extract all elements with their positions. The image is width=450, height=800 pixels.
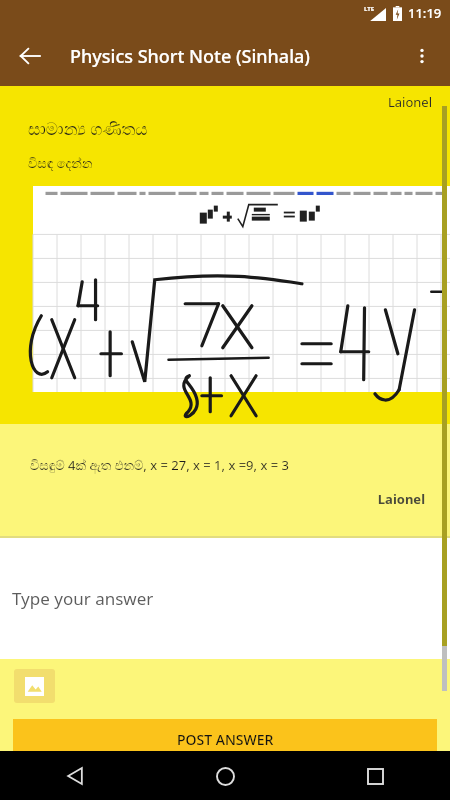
button[interactable]: More options [398, 32, 446, 80]
staticText: විසඳ දෙන්න [28, 154, 93, 172]
staticText: Type your answer [12, 587, 154, 610]
staticText: 11:19 [408, 4, 442, 22]
button[interactable]: Back [51, 752, 99, 800]
staticText: Laionel [0, 93, 432, 111]
staticText: විසඳුම් 4ක් ඇත එනම්, x = 27, x = 1, x =9… [30, 456, 289, 474]
button[interactable]: Type your answer [0, 538, 450, 659]
staticText: LTE [364, 5, 375, 13]
button[interactable]: Question image [33, 186, 450, 392]
staticText: POST ANSWER [177, 730, 274, 749]
button[interactable]: Recents [351, 752, 399, 800]
button[interactable]: Home [201, 752, 249, 800]
button[interactable]: Back [6, 32, 54, 80]
staticText: සාමාන්‍ය ගණිතය [28, 117, 148, 140]
staticText: Physics Short Note (Sinhala) [70, 44, 310, 69]
staticText: Laionel [0, 490, 425, 508]
button[interactable]: POST ANSWER [13, 719, 437, 751]
button[interactable]: Attach image [14, 669, 55, 703]
